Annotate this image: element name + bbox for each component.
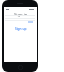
button[interactable]: Sign up (15, 27, 27, 31)
staticText: Sign in (14, 12, 28, 18)
